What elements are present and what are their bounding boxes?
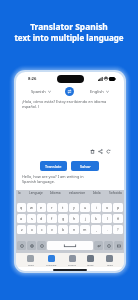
staticText: Spanish [31,89,46,94]
staticText: lo [18,191,21,195]
staticText: n [73,227,76,232]
staticText: w [30,205,33,210]
button[interactable]: a [17,214,26,223]
button[interactable]: h [69,214,79,223]
staticText: Photos [68,263,76,266]
staticText: Sofocida [109,191,122,195]
button[interactable]: Music [87,255,94,266]
button[interactable]: z [17,225,26,234]
button[interactable]: Sofocida [109,191,122,195]
staticText: z [21,227,23,232]
staticText: English [90,89,104,94]
button[interactable]: Store [27,255,34,266]
staticText: u [84,205,87,210]
button[interactable]: Language [37,241,46,250]
staticText: f [51,216,53,221]
button[interactable]: Idioma [50,191,61,195]
button[interactable]: Translate [40,161,67,171]
button[interactable]: Emoji [17,241,26,250]
button[interactable]: , [91,225,101,234]
button[interactable]: o [102,203,112,212]
button[interactable]: Delete [89,148,96,155]
staticText: Lenguaje [29,191,43,195]
button[interactable]: q [17,203,26,212]
staticText: More [107,263,113,266]
staticText: . [107,227,108,232]
button[interactable]: Lenguaje [29,191,43,195]
staticText: i [96,205,97,210]
button[interactable]: Return [94,241,103,250]
staticText: o [106,205,109,210]
staticText: r [51,205,53,210]
staticText: x [31,227,33,232]
button[interactable]: Copy [105,148,112,155]
button[interactable]: p [113,203,123,212]
staticText: 8:26 [28,76,37,82]
staticText: v [51,227,53,232]
staticText: Hello, how are you? I am writing in Span… [22,174,84,184]
staticText: Translate [46,263,57,266]
staticText: b [62,227,65,232]
staticText: Translate [45,164,62,169]
button[interactable]: English [74,86,124,97]
button[interactable]: j [80,214,90,223]
button[interactable]: Hide keyboard [114,241,123,250]
button[interactable]: u [80,203,90,212]
button[interactable]: Swap languages [65,87,74,96]
button[interactable]: Space [47,241,93,250]
staticText: m [83,227,87,232]
button[interactable]: f [47,214,57,223]
staticText: d [40,216,43,221]
button[interactable]: s [27,214,36,223]
staticText: text into multiple language [14,32,124,43]
staticText: c [41,227,43,232]
staticText: q [20,205,23,210]
staticText: y [73,205,75,210]
button[interactable]: w [27,203,36,212]
button[interactable]: More [106,255,113,266]
button[interactable]: t [58,203,68,212]
staticText: s [31,216,33,221]
staticText: Store [28,263,34,266]
staticText: g [62,216,65,221]
staticText: l [107,216,108,221]
staticText: Idola [93,191,101,195]
staticText: Salvar [80,164,91,169]
button[interactable]: x [27,225,36,234]
button[interactable]: c [37,225,46,234]
staticText: t [62,205,64,210]
staticText: Translator Spanish [30,21,108,32]
button[interactable]: Spanish [16,86,65,97]
staticText: ñ [117,216,120,221]
button[interactable]: . [102,225,112,234]
button[interactable]: y [69,203,79,212]
button[interactable]: n [69,225,79,234]
button[interactable]: Translate [46,255,57,266]
button[interactable]: Salvar [71,161,99,171]
button[interactable]: Microphone [104,241,113,250]
button[interactable]: k [91,214,101,223]
button[interactable]: Settings [27,241,36,250]
button[interactable]: m [80,225,90,234]
button[interactable]: eslavonion [69,191,86,195]
staticText: k [95,216,97,221]
button[interactable]: Share [97,148,104,155]
staticText: ¡Hola, cómo estás? Estoy escribiendo en … [22,99,107,109]
button[interactable]: lo [18,191,21,195]
button[interactable]: Photos [68,255,76,266]
button[interactable]: r [47,203,57,212]
button[interactable]: i [91,203,101,212]
button[interactable]: ñ [113,214,123,223]
staticText: p [117,205,120,210]
staticText: Music [87,263,94,266]
button[interactable]: g [58,214,68,223]
button[interactable]: Idola [93,191,101,195]
button[interactable]: v [47,225,57,234]
button[interactable]: ? [113,225,123,234]
button[interactable]: d [37,214,46,223]
staticText: j [85,216,86,221]
button[interactable]: l [102,214,112,223]
button[interactable]: b [58,225,68,234]
staticText: a [20,216,23,221]
button[interactable]: e [37,203,46,212]
